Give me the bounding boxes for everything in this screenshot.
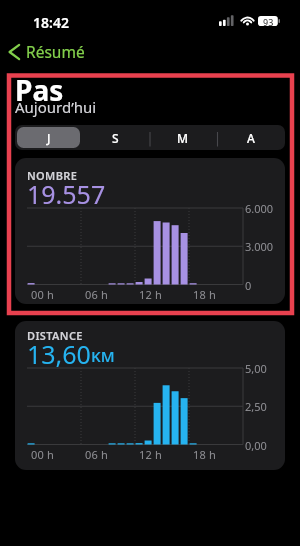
staticText: 18:42 bbox=[33, 13, 69, 32]
staticText: 06 h bbox=[85, 447, 109, 462]
staticText: 00 h bbox=[31, 447, 55, 462]
staticText: NOMBRE bbox=[27, 168, 78, 183]
staticText: 93 bbox=[263, 16, 274, 26]
staticText: M bbox=[177, 130, 189, 146]
staticText: 2,50 bbox=[245, 399, 267, 414]
staticText: 06 h bbox=[85, 287, 109, 302]
staticText: 0,00 bbox=[245, 438, 267, 453]
button[interactable]: S bbox=[82, 125, 149, 150]
staticText: J bbox=[47, 130, 51, 146]
staticText: A bbox=[247, 130, 255, 146]
staticText: 13,60 bbox=[27, 337, 91, 371]
button[interactable]: A bbox=[217, 125, 285, 150]
button[interactable]: Résumé bbox=[4, 40, 88, 64]
button[interactable]: M bbox=[149, 125, 217, 150]
staticText: KM bbox=[91, 346, 115, 366]
staticText: 6.000 bbox=[245, 201, 274, 216]
staticText: 3.000 bbox=[245, 239, 274, 254]
staticText: DISTANCE bbox=[27, 328, 83, 343]
button[interactable]: J bbox=[15, 125, 82, 150]
staticText: Résumé bbox=[26, 41, 85, 62]
staticText: 12 h bbox=[139, 287, 163, 302]
staticText: 12 h bbox=[139, 447, 163, 462]
staticText: 5,00 bbox=[245, 361, 267, 376]
staticText: 0 bbox=[245, 278, 252, 293]
staticText: Aujourd’hui bbox=[15, 97, 97, 117]
staticText: S bbox=[112, 130, 119, 146]
staticText: Pas bbox=[15, 71, 64, 109]
staticText: 00 h bbox=[31, 287, 55, 302]
staticText: 18 h bbox=[193, 447, 217, 462]
staticText: 19.557 bbox=[27, 177, 106, 211]
staticText: 18 h bbox=[193, 287, 217, 302]
